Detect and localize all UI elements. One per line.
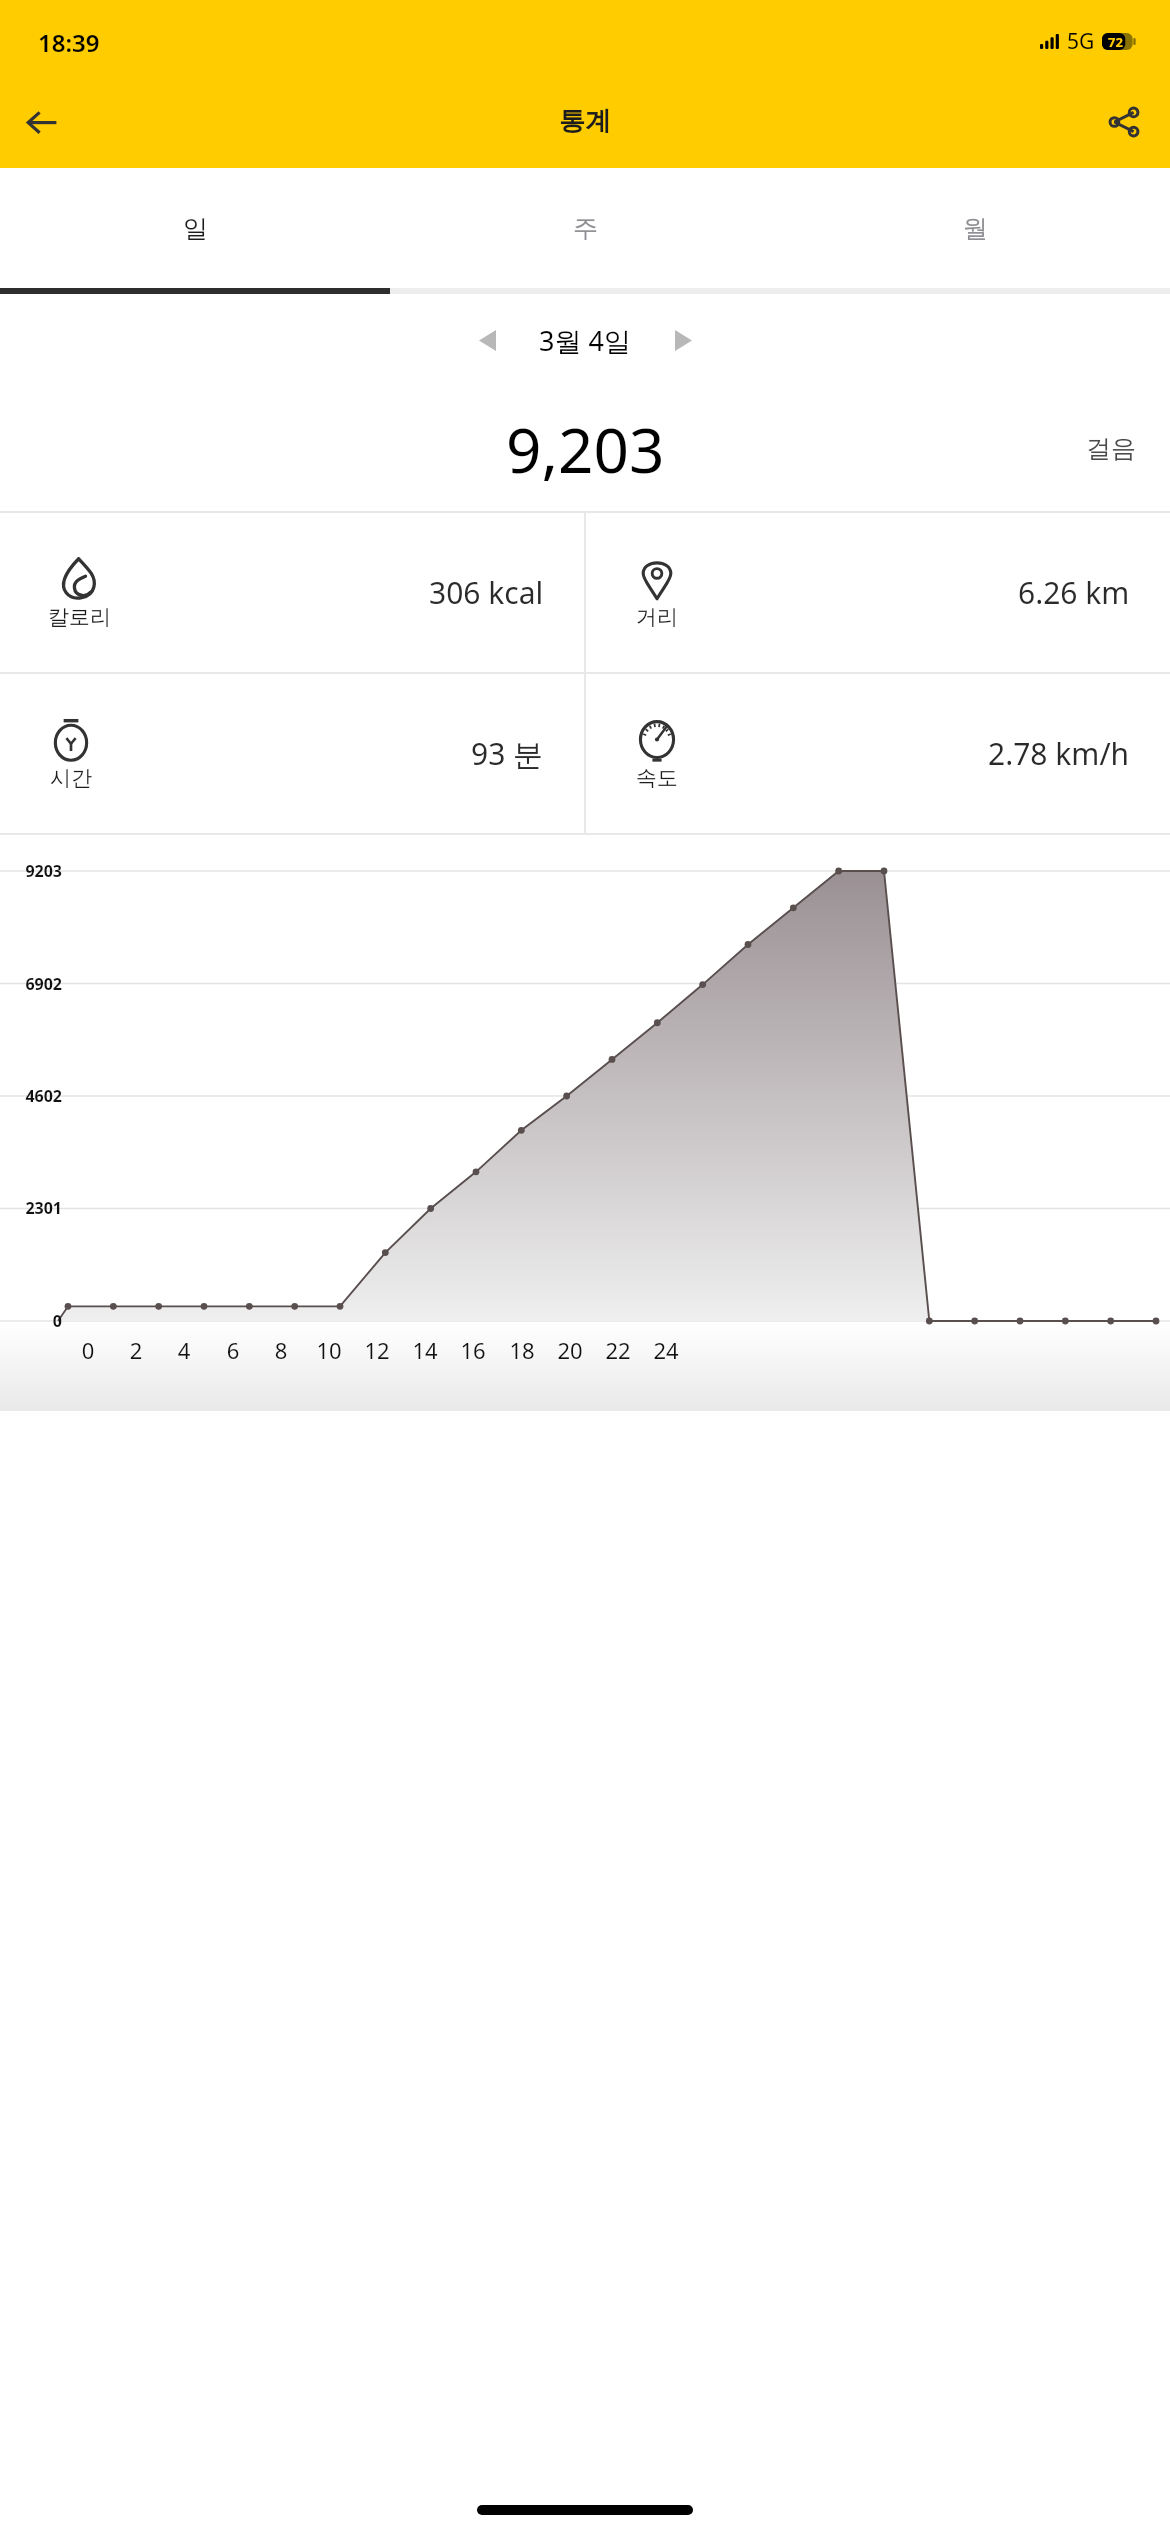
- staticText: 2: [116, 1335, 156, 1365]
- staticText: 72: [1108, 33, 1123, 50]
- staticText: 10: [309, 1335, 349, 1365]
- button[interactable]: 시간: [0, 674, 584, 833]
- staticText: 2.78 km/h: [988, 733, 1130, 774]
- button[interactable]: 칼로리: [0, 513, 584, 672]
- staticText: 0: [68, 1335, 108, 1365]
- staticText: 12: [357, 1335, 397, 1365]
- staticText: 9,203: [506, 407, 665, 491]
- staticText: 9203: [6, 860, 62, 882]
- staticText: 306 kcal: [429, 572, 544, 613]
- staticText: 6.26 km: [1018, 572, 1130, 613]
- staticText: 걸음: [1086, 433, 1136, 464]
- staticText: 칼로리: [48, 604, 111, 630]
- staticText: 18:39: [38, 26, 100, 59]
- staticText: 시간: [50, 765, 92, 791]
- staticText: 5G: [1067, 27, 1095, 56]
- button[interactable]: 주: [390, 168, 780, 288]
- button[interactable]: 월: [780, 168, 1170, 288]
- staticText: 8: [261, 1335, 301, 1365]
- button[interactable]: Previous day: [459, 312, 515, 368]
- staticText: 4: [164, 1335, 204, 1365]
- staticText: 월: [963, 213, 988, 244]
- button[interactable]: 일: [0, 168, 390, 288]
- staticText: 6: [213, 1335, 253, 1365]
- staticText: 0: [6, 1310, 62, 1332]
- staticText: 18: [502, 1335, 542, 1365]
- button[interactable]: 거리: [586, 513, 1170, 672]
- staticText: 일: [183, 213, 208, 244]
- staticText: 통계: [559, 105, 611, 138]
- staticText: 22: [598, 1335, 638, 1365]
- staticText: 4602: [6, 1085, 62, 1107]
- button[interactable]: Next day: [655, 312, 711, 368]
- staticText: 20: [550, 1335, 590, 1365]
- staticText: 주: [573, 213, 598, 244]
- staticText: 16: [453, 1335, 493, 1365]
- staticText: 2301: [6, 1197, 62, 1219]
- staticText: 93 분: [471, 733, 544, 774]
- button[interactable]: Share: [1092, 90, 1156, 154]
- staticText: 6902: [6, 973, 62, 995]
- button[interactable]: 속도: [586, 674, 1170, 833]
- staticText: 속도: [636, 765, 678, 791]
- staticText: 3월 4일: [539, 322, 631, 359]
- staticText: 14: [405, 1335, 445, 1365]
- staticText: 24: [646, 1335, 686, 1365]
- button[interactable]: Back: [10, 90, 74, 154]
- staticText: 거리: [636, 604, 678, 630]
